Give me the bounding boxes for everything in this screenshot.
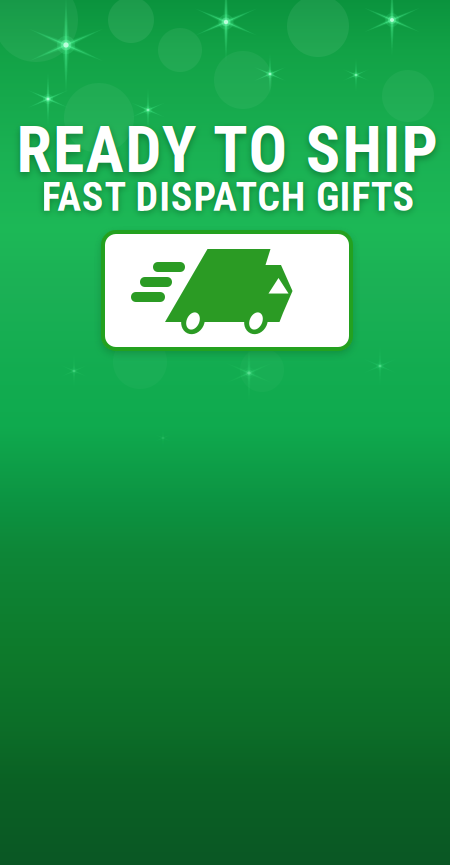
staticText: READY TO SHIP xyxy=(16,112,438,187)
staticText: FAST DISPATCH GIFTS xyxy=(42,174,414,220)
